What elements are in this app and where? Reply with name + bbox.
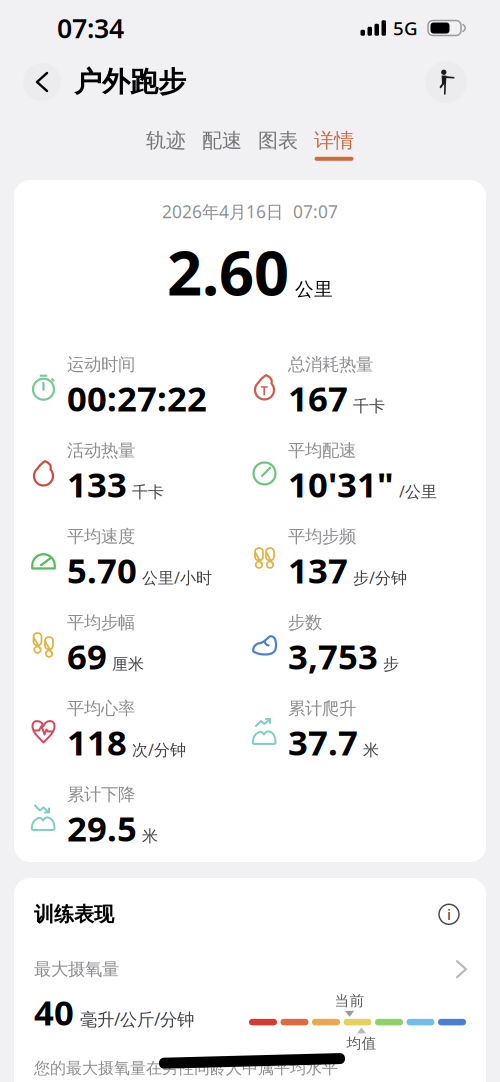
staticText: /公里	[399, 481, 437, 502]
button[interactable]: 图表	[258, 128, 298, 161]
staticText: 37.7	[288, 719, 358, 765]
staticText: 运动时间	[67, 354, 135, 375]
staticText: 米	[363, 740, 379, 760]
staticText: 千卡	[132, 482, 164, 502]
staticText: 5.70	[67, 547, 137, 593]
staticText: 平均步幅	[67, 612, 135, 633]
button[interactable]: 详情	[314, 128, 354, 161]
staticText: 当前	[334, 992, 364, 1010]
staticText: 平均步频	[288, 526, 356, 547]
staticText: 69	[67, 633, 107, 679]
staticText: 2026年4月16日 07:07	[162, 200, 338, 223]
staticText: 米	[142, 826, 158, 846]
staticText: i	[447, 904, 451, 924]
staticText: 公里	[295, 278, 333, 301]
staticText: 00:27:22	[67, 375, 207, 421]
staticText: 均值	[346, 1034, 376, 1052]
staticText: 5G	[393, 16, 418, 40]
button[interactable]: 信息	[439, 904, 459, 924]
button[interactable]: 配速	[202, 128, 242, 161]
staticText: 133	[67, 461, 127, 507]
staticText: 厘米	[112, 654, 144, 674]
button[interactable]: 运动员	[425, 61, 467, 103]
staticText: 累计下降	[67, 784, 135, 805]
button[interactable]: 最大摄氧量	[34, 959, 466, 980]
staticText: 平均速度	[67, 526, 135, 547]
staticText: 次/分钟	[132, 739, 186, 760]
staticText: 167	[288, 375, 348, 421]
staticText: 轨迹	[146, 128, 186, 153]
staticText: 您的最大摄氧量在男性同龄人中属平均水平	[34, 1058, 338, 1078]
staticText: 累计爬升	[288, 698, 356, 719]
staticText: 07:34	[57, 10, 124, 46]
staticText: 配速	[202, 128, 242, 153]
staticText: 2.60	[167, 231, 289, 312]
staticText: 10'31"	[288, 461, 394, 507]
staticText: 详情	[314, 128, 354, 153]
staticText: 户外跑步	[74, 65, 186, 99]
staticText: 40	[34, 989, 74, 1035]
staticText: 118	[67, 719, 127, 765]
staticText: 29.5	[67, 805, 137, 851]
staticText: 步	[383, 654, 399, 674]
staticText: 图表	[258, 128, 298, 153]
staticText: 平均心率	[67, 698, 135, 719]
staticText: 3,753	[288, 633, 378, 679]
staticText: 毫升/公斤/分钟	[80, 1008, 194, 1031]
staticText: 137	[288, 547, 348, 593]
button[interactable]: Back	[23, 63, 61, 101]
staticText: 总消耗热量	[288, 354, 373, 375]
staticText: 平均配速	[288, 440, 356, 461]
button[interactable]: 轨迹	[146, 128, 186, 161]
staticText: 训练表现	[34, 902, 114, 927]
staticText: 步数	[288, 612, 322, 633]
staticText: 最大摄氧量	[34, 959, 119, 980]
staticText: 活动热量	[67, 440, 135, 461]
staticText: T	[260, 381, 268, 399]
staticText: 千卡	[353, 396, 385, 416]
staticText: 步/分钟	[353, 567, 407, 588]
staticText: 公里/小时	[142, 567, 212, 588]
